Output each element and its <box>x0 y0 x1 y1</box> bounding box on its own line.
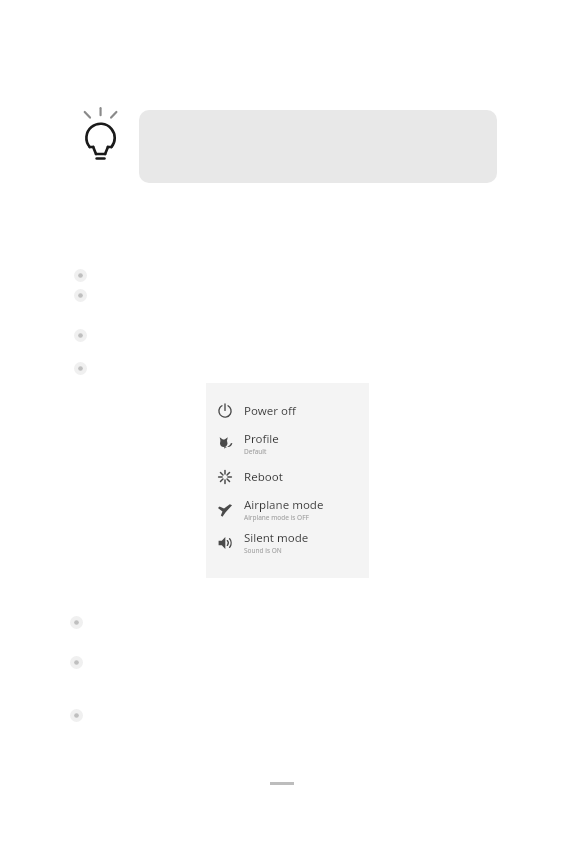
staticText: Profile <box>244 431 279 447</box>
staticText: Silent mode <box>244 530 309 546</box>
staticText: Default <box>244 447 267 456</box>
button[interactable]: Power off <box>206 394 296 427</box>
staticText: Airplane mode is OFF <box>244 513 309 522</box>
staticText: Sound is ON <box>244 546 282 555</box>
staticText: Reboot <box>244 469 283 485</box>
button[interactable]: Tip <box>78 105 126 175</box>
button[interactable]: Airplane mode <box>206 493 324 526</box>
button[interactable]: Reboot <box>206 460 283 493</box>
button[interactable]: Silent mode <box>206 526 309 559</box>
staticText: Power off <box>244 403 296 419</box>
button[interactable]: Profile <box>206 427 279 460</box>
staticText: Airplane mode <box>244 497 324 513</box>
